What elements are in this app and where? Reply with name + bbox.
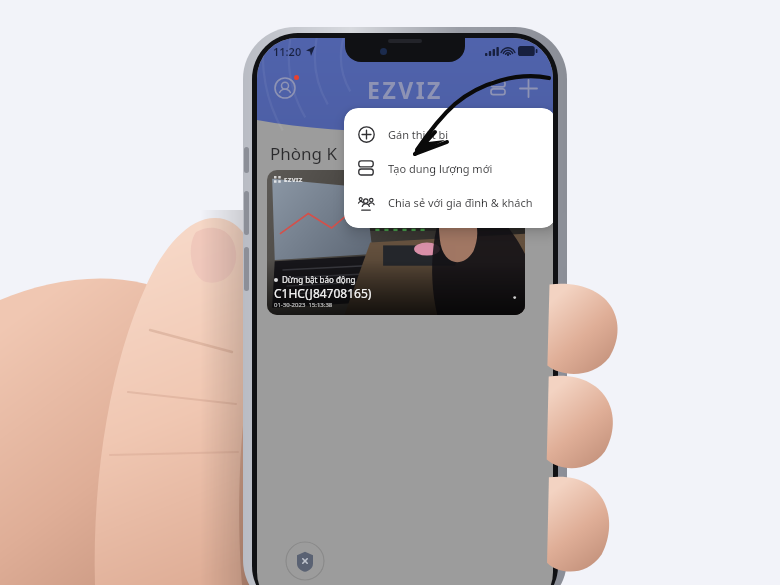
staticText: Tạo dung lượng mới xyxy=(388,161,493,176)
button[interactable]: Layout xyxy=(483,73,513,103)
button[interactable]: Account xyxy=(269,72,301,104)
staticText: 11:20 xyxy=(273,44,302,59)
button[interactable]: Disarm xyxy=(285,541,325,581)
staticText: 01-30-2023 15:13:38 xyxy=(274,301,333,309)
staticText: C1HC(J84708165) xyxy=(274,285,372,301)
button[interactable]: Gán thiết bị xyxy=(344,117,553,151)
staticText: Chia sẻ với gia đình & khách xyxy=(388,195,533,210)
button[interactable]: Add xyxy=(513,73,543,103)
staticText: EZVIZ xyxy=(367,74,443,105)
button[interactable]: Tạo dung lượng mới xyxy=(344,151,553,185)
staticText: Gán thiết bị xyxy=(388,127,449,142)
staticText: EZVIZ xyxy=(284,176,303,184)
staticText: Dừng bật báo động xyxy=(282,274,356,285)
staticText: Phòng K xyxy=(270,142,337,165)
button[interactable]: Chia sẻ với gia đình & khách xyxy=(344,185,553,219)
button[interactable]: EZVIZ xyxy=(267,170,525,315)
